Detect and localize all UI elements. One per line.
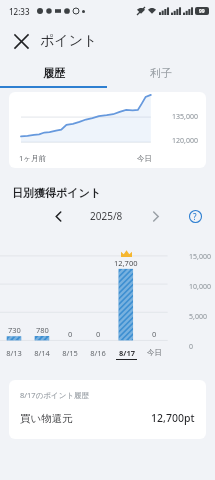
staticText: 5,000 (189, 312, 207, 322)
staticText: 0 (96, 329, 101, 339)
staticText: 今日 (137, 154, 152, 163)
staticText: 135,000 (172, 112, 198, 122)
staticText: 買い物還元 (20, 412, 73, 425)
staticText: 0 (189, 342, 194, 352)
button[interactable]: 8/17 (112, 348, 140, 366)
button[interactable]: Next month (145, 206, 165, 226)
button[interactable]: 今日 (140, 348, 168, 366)
button[interactable]: 730 (0, 238, 28, 366)
staticText: 780 (36, 325, 49, 335)
staticText: 1ヶ月前 (19, 153, 46, 163)
staticText: 12,700pt (151, 411, 195, 425)
staticText: 日別獲得ポイント (12, 186, 102, 200)
staticText: 2025/8 (90, 209, 123, 223)
button[interactable]: 0 (56, 238, 84, 366)
button[interactable]: 8/15 (56, 348, 84, 366)
staticText: ポイント (40, 32, 98, 50)
button[interactable]: 135,000 (9, 92, 206, 168)
staticText: 8/15 (62, 348, 78, 358)
staticText: 15,000 (189, 252, 211, 262)
staticText: 8/16 (90, 348, 106, 358)
button[interactable]: 8/14 (28, 348, 56, 366)
staticText: 8/13 (6, 348, 22, 358)
staticText: 履歴 (43, 66, 65, 80)
button[interactable]: 8/17のポイント履歴 (9, 380, 206, 439)
button[interactable]: Previous month (48, 206, 68, 226)
staticText: 730 (8, 325, 21, 335)
button[interactable]: 12,700 (112, 238, 140, 366)
button[interactable]: 0 (140, 238, 168, 366)
staticText: 8/14 (34, 348, 50, 358)
staticText: 99 (199, 8, 205, 15)
button[interactable]: 履歴 (0, 60, 107, 86)
staticText: 利子 (150, 66, 172, 80)
button[interactable]: 8/16 (84, 348, 112, 366)
button[interactable]: 8/13 (0, 348, 28, 366)
staticText: 0 (152, 329, 157, 339)
staticText: 120,000 (172, 136, 198, 146)
button[interactable]: 利子 (107, 60, 215, 86)
staticText: 12:33 (9, 6, 30, 17)
button[interactable]: Close (8, 28, 34, 54)
button[interactable]: 780 (28, 238, 56, 366)
staticText: ? (193, 211, 197, 222)
staticText: 今日 (147, 348, 162, 357)
button[interactable]: 0 (84, 238, 112, 366)
staticText: 12,700 (114, 258, 138, 268)
staticText: 8/17 (119, 348, 135, 358)
staticText: 8/17のポイント履歴 (20, 390, 90, 400)
button[interactable]: Help (185, 206, 205, 226)
staticText: 0 (68, 329, 73, 339)
staticText: 10,000 (189, 282, 211, 292)
